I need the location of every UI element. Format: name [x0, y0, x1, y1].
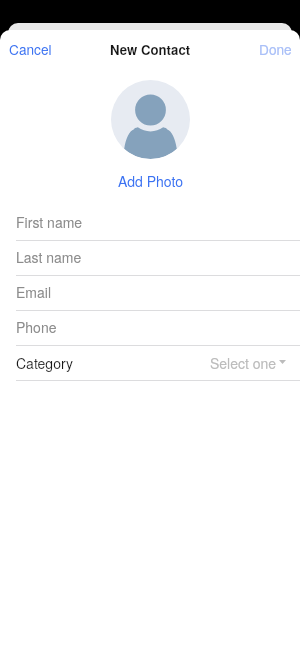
button[interactable]: Category	[0, 346, 300, 381]
staticText: Email	[16, 282, 51, 302]
button[interactable]: Phone	[0, 311, 300, 346]
staticText: Done	[259, 39, 292, 59]
staticText: Category	[16, 353, 73, 373]
button[interactable]: Done	[249, 34, 300, 66]
button[interactable]: Last name	[0, 241, 300, 276]
button[interactable]: Cancel	[0, 34, 62, 66]
staticText: New Contact	[110, 40, 191, 59]
staticText: Last name	[16, 247, 82, 267]
button[interactable]: Add Photo	[111, 80, 190, 159]
staticText: Cancel	[9, 39, 52, 59]
button[interactable]: Email	[0, 276, 300, 311]
button[interactable]: First name	[0, 206, 300, 241]
staticText: Select one	[210, 353, 277, 373]
staticText: First name	[16, 212, 83, 232]
staticText: Add Photo	[118, 171, 183, 191]
staticText: Phone	[16, 317, 57, 337]
button[interactable]: Add Photo	[112, 168, 189, 192]
